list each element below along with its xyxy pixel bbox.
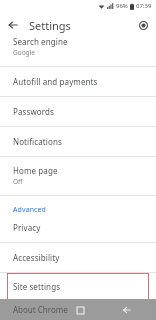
button[interactable]: Notifications [0,127,156,156]
staticText: 96% [116,2,128,10]
button[interactable]: Search engine [0,38,156,66]
staticText: Notifications [13,136,62,147]
button[interactable]: Back [118,301,136,319]
staticText: 07:39 [136,2,152,10]
staticText: Advanced [13,205,46,215]
button[interactable]: Advanced [0,196,156,218]
staticText: Site settings [13,281,61,292]
staticText: Autofill and payments [13,76,98,87]
staticText: About Chrome [13,304,68,315]
staticText: Search engine [13,38,68,47]
staticText: Accessibility [13,252,60,263]
staticText: Passwords [13,106,54,117]
button[interactable]: Back [5,17,21,33]
button[interactable]: Passwords [0,97,156,126]
button[interactable]: Help and feedback [135,17,151,33]
button[interactable]: Recent apps [71,301,89,319]
staticText: Google [13,48,35,57]
button[interactable]: Privacy [0,218,156,242]
staticText: Off [13,177,23,186]
button[interactable]: Languages [0,301,156,310]
button[interactable]: Site settings [7,273,149,300]
button[interactable]: Home page [0,157,156,195]
button[interactable]: Autofill and payments [0,67,156,96]
staticText: Home page [13,165,58,176]
staticText: Settings [29,18,71,33]
button[interactable]: Accessibility [0,243,156,272]
staticText: Privacy [13,222,41,233]
